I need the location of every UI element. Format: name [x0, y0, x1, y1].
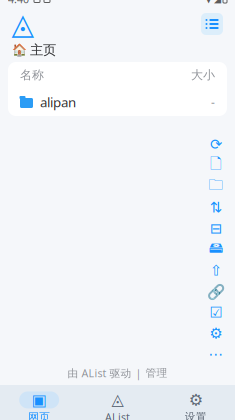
staticText: 主页 [30, 42, 56, 58]
button[interactable]: More [208, 348, 224, 361]
staticText: ⋯ [208, 346, 223, 363]
staticText: ⇅ [210, 199, 222, 216]
staticText: ◢ [214, 0, 221, 4]
staticText: 🗀 [208, 174, 223, 199]
staticText: ☑ [209, 304, 222, 321]
button[interactable]: 管理 [145, 366, 167, 379]
button[interactable]: New file [208, 159, 224, 172]
button[interactable]: Refresh [208, 138, 224, 151]
staticText: - [211, 94, 215, 110]
staticText: ⚙ [189, 391, 203, 409]
staticText: 名称 [20, 68, 44, 82]
staticText: ◬ [111, 390, 123, 408]
button[interactable]: Copy link [208, 285, 224, 298]
staticText: 🔗 [207, 283, 225, 300]
button[interactable]: Upload [208, 264, 224, 277]
staticText: ⟳ [210, 136, 222, 153]
staticText: 4:40 [8, 0, 29, 6]
staticText: 🗋 [210, 153, 222, 178]
staticText: | [135, 366, 141, 380]
button[interactable]: Select [208, 306, 224, 319]
staticText: 🖴 [208, 237, 223, 262]
staticText: 网页 [28, 410, 50, 420]
button[interactable]: New folder [208, 180, 224, 193]
button[interactable]: alipan [8, 88, 227, 116]
staticText: alipan [40, 93, 76, 111]
button[interactable]: AList [78, 385, 157, 420]
button[interactable]: Sort [208, 201, 224, 214]
staticText: AList [105, 410, 130, 420]
button[interactable]: Storage [208, 243, 224, 256]
staticText: ⇧ [210, 262, 222, 279]
button[interactable]: 🏠 [12, 42, 56, 58]
staticText: ⚙ [209, 325, 222, 342]
button[interactable]: Settings [208, 327, 224, 340]
staticText: ◬ [11, 7, 34, 41]
button[interactable]: Switch layout [201, 13, 223, 35]
staticText: 设置 [185, 410, 207, 420]
button[interactable]: Settings [157, 385, 235, 420]
staticText: 🏠 [12, 43, 27, 57]
staticText: ▣ [32, 391, 47, 409]
staticText: ▼ [205, 0, 212, 4]
button[interactable]: Remove folder [208, 222, 224, 235]
button[interactable]: Web [0, 385, 78, 420]
staticText: 大小 [191, 68, 215, 82]
staticText: 由 AList 驱动 [67, 366, 131, 380]
staticText: ⊟ [210, 220, 222, 237]
staticText: 管理 [145, 366, 167, 379]
